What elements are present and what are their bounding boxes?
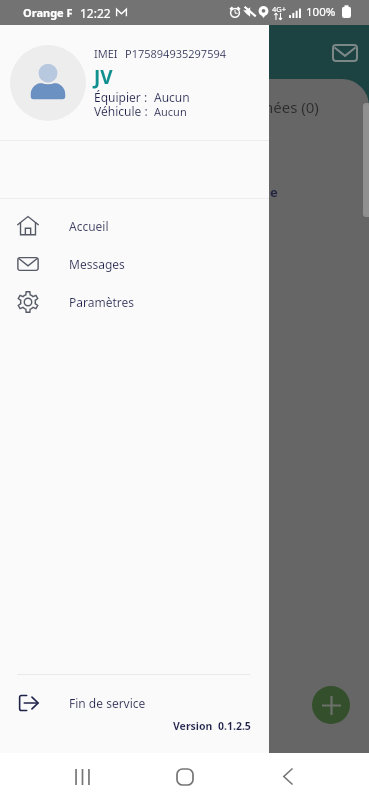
staticText: Orange F (23, 5, 73, 20)
staticText: Équipier : (94, 89, 148, 105)
button[interactable]: Paramètres (0, 283, 269, 321)
staticText: 12:22 (80, 5, 111, 21)
button[interactable]: Retour (267, 753, 309, 800)
staticText: 100% (306, 4, 336, 20)
staticText: Messages (69, 256, 125, 272)
button[interactable]: Messages (0, 245, 269, 283)
button[interactable]: Accueil (164, 753, 206, 800)
staticText: 0.1.2.5 (218, 719, 251, 733)
staticText: Véhicule : (94, 103, 148, 119)
staticText: nées (0) (264, 97, 319, 117)
staticText: Accueil (69, 218, 109, 234)
button[interactable]: Messages (328, 36, 361, 69)
button[interactable]: Fin de service (0, 684, 269, 722)
staticText: Aucun (154, 104, 187, 119)
staticText: e (270, 183, 278, 201)
staticText: Fin de service (69, 695, 146, 711)
staticText: P175894935297594 (125, 46, 227, 61)
button[interactable]: Ajouter (312, 686, 350, 724)
staticText: Paramètres (69, 294, 134, 310)
button[interactable]: Accueil (0, 207, 269, 245)
staticText: 4G+ (272, 4, 287, 14)
staticText: Version (173, 719, 213, 733)
staticText: IMEI (94, 46, 118, 61)
staticText: Aucun (154, 89, 190, 105)
button[interactable]: Applications récentes (61, 753, 103, 800)
staticText: JV (94, 64, 113, 90)
